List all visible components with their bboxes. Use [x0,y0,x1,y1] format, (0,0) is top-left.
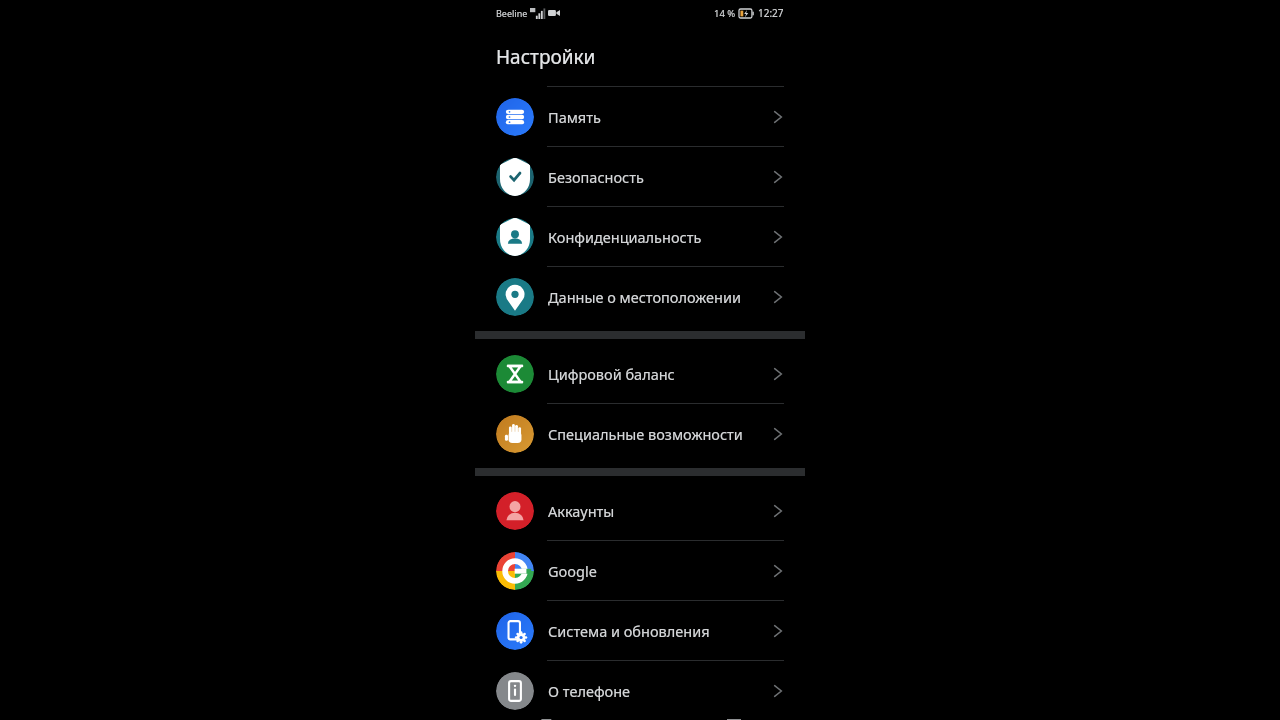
button[interactable]: Безопасность [475,147,805,206]
button[interactable]: Конфиденциальность [475,207,805,266]
button[interactable]: Данные о местоположении [475,267,805,326]
staticText: Безопасность [548,167,772,187]
staticText: Данные о местоположении [548,287,772,307]
button[interactable]: Система и обновления [475,601,805,660]
staticText: Цифровой баланс [548,364,772,384]
button[interactable]: О телефоне [475,661,805,720]
staticText: Система и обновления [548,621,772,641]
button[interactable]: Память [475,87,805,146]
staticText: Аккаунты [548,501,772,521]
staticText: Beeline [496,7,528,19]
staticText: Настройки [496,44,596,70]
staticText: 12:27 [758,6,784,20]
staticText: О телефоне [548,681,772,701]
staticText: 14 % [714,7,736,20]
button[interactable]: Google [475,541,805,600]
staticText: Память [548,107,772,127]
button[interactable]: Цифровой баланс [475,344,805,403]
staticText: Специальные возможности [548,424,772,444]
staticText: Конфиденциальность [548,227,772,247]
button[interactable]: Аккаунты [475,481,805,540]
staticText: Google [548,561,772,581]
button[interactable]: Специальные возможности [475,404,805,463]
